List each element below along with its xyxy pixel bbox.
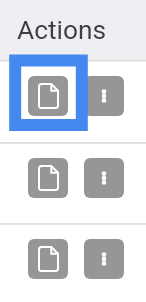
button[interactable]: More options bbox=[84, 239, 124, 279]
button[interactable]: Actions bbox=[0, 0, 146, 60]
button[interactable]: More options bbox=[84, 158, 124, 198]
button[interactable]: Open document bbox=[28, 76, 68, 116]
button[interactable]: Open document bbox=[28, 158, 68, 198]
staticText: Actions bbox=[17, 15, 107, 46]
button[interactable]: Open document bbox=[28, 239, 68, 279]
button[interactable]: More options bbox=[84, 76, 124, 116]
